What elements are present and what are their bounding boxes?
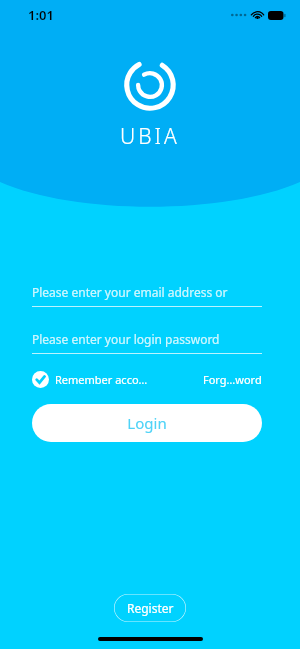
button[interactable]: Please enter your login password [32,325,262,353]
staticText: Forg…word [203,372,262,387]
staticText: Remember acco… [55,372,148,387]
staticText: Login [127,413,167,433]
staticText: UBIA [120,122,180,151]
button[interactable]: Please enter your email address or mobil… [32,278,262,306]
button[interactable]: Login [32,404,262,442]
staticText: Please enter your email address or mobil… [32,284,262,300]
button[interactable]: Register [114,594,186,622]
staticText: Please enter your login password [32,331,220,347]
staticText: 1:01 [28,6,54,24]
staticText: Register [127,600,174,616]
button[interactable]: Forg…word [203,369,262,390]
button[interactable]: Remember acco… [32,368,148,391]
